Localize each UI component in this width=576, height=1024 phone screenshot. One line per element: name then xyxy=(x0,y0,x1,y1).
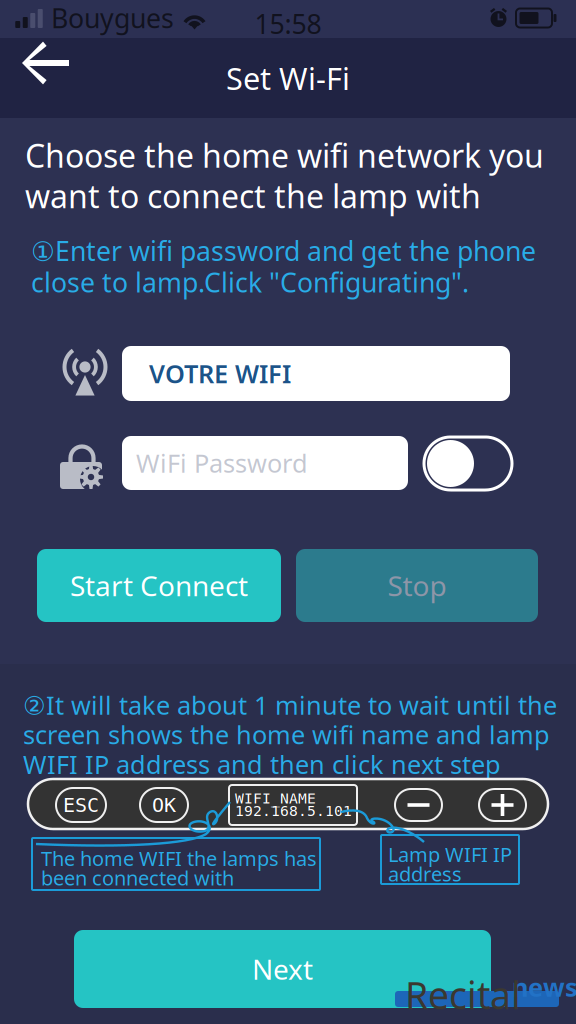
staticText: ①Enter wifi password and get the phone xyxy=(31,233,536,268)
button[interactable]: Decrease xyxy=(395,789,442,821)
staticText: OK xyxy=(152,794,176,816)
staticText: WIFI IP address and then click next step xyxy=(23,747,501,781)
staticText: address xyxy=(388,861,462,887)
button[interactable]: ESC xyxy=(56,788,106,822)
button[interactable]: OK xyxy=(140,788,188,822)
staticText: The home WIFI the lamps has xyxy=(41,845,317,872)
staticText: want to connect the lamp with xyxy=(25,174,481,217)
button[interactable]: Stop xyxy=(296,549,538,622)
button[interactable]: Start Connect xyxy=(37,549,281,622)
staticText: WiFi Password xyxy=(136,446,308,480)
staticText: Stop xyxy=(387,567,446,604)
staticText: news xyxy=(512,970,576,1004)
staticText: 192.168.5.101 xyxy=(235,803,352,819)
button[interactable]: Back xyxy=(0,38,92,118)
staticText: VOTRE WIFI xyxy=(149,357,291,390)
button[interactable]: Show password xyxy=(424,437,512,490)
staticText: been connected with xyxy=(41,865,234,891)
staticText: Lamp WIFI IP xyxy=(388,841,512,868)
staticText: screen shows the home wifi name and lamp xyxy=(23,718,550,751)
staticText: ②It will take about 1 minute to wait unt… xyxy=(23,688,557,722)
staticText: WIFI_NAME xyxy=(235,790,316,807)
staticText: Start Connect xyxy=(70,567,248,604)
button[interactable]: WiFi Password xyxy=(122,436,408,490)
button[interactable]: Next xyxy=(74,930,491,1008)
button[interactable]: VOTRE WIFI xyxy=(122,346,510,401)
staticText: Set Wi-Fi xyxy=(226,58,350,98)
staticText: ESC xyxy=(63,794,99,816)
staticText: Next xyxy=(252,950,313,988)
staticText: Choose the home wifi network you xyxy=(25,134,544,176)
staticText: 15:58 xyxy=(254,6,321,41)
staticText: close to lamp.Click "Configurating". xyxy=(31,264,469,300)
button[interactable]: Increase xyxy=(479,789,526,821)
staticText: Recital xyxy=(405,970,521,1020)
staticText: Bouygues xyxy=(51,0,174,36)
